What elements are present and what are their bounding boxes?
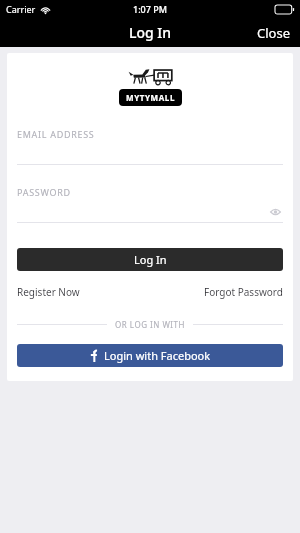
button[interactable]: Login with Facebook	[17, 344, 283, 367]
button[interactable]: Log In	[17, 248, 283, 271]
staticText: 1:07 PM	[133, 3, 167, 15]
staticText: PASSWORD	[17, 186, 71, 198]
button[interactable]: Show password	[268, 206, 283, 218]
staticText: Log In	[129, 23, 172, 42]
staticText: Close	[257, 24, 290, 42]
staticText: Register Now	[17, 285, 80, 299]
staticText: MYTYMALL	[126, 92, 175, 103]
button[interactable]: Register Now	[17, 285, 80, 299]
staticText: EMAIL ADDRESS	[17, 128, 95, 140]
button[interactable]: Forgot Password	[204, 285, 283, 299]
staticText: Carrier	[6, 3, 36, 15]
staticText: Forgot Password	[204, 285, 283, 299]
staticText: Log In	[134, 252, 167, 267]
button[interactable]: Close	[247, 20, 300, 46]
staticText: OR LOG IN WITH	[115, 319, 185, 330]
staticText: Login with Facebook	[104, 348, 211, 363]
